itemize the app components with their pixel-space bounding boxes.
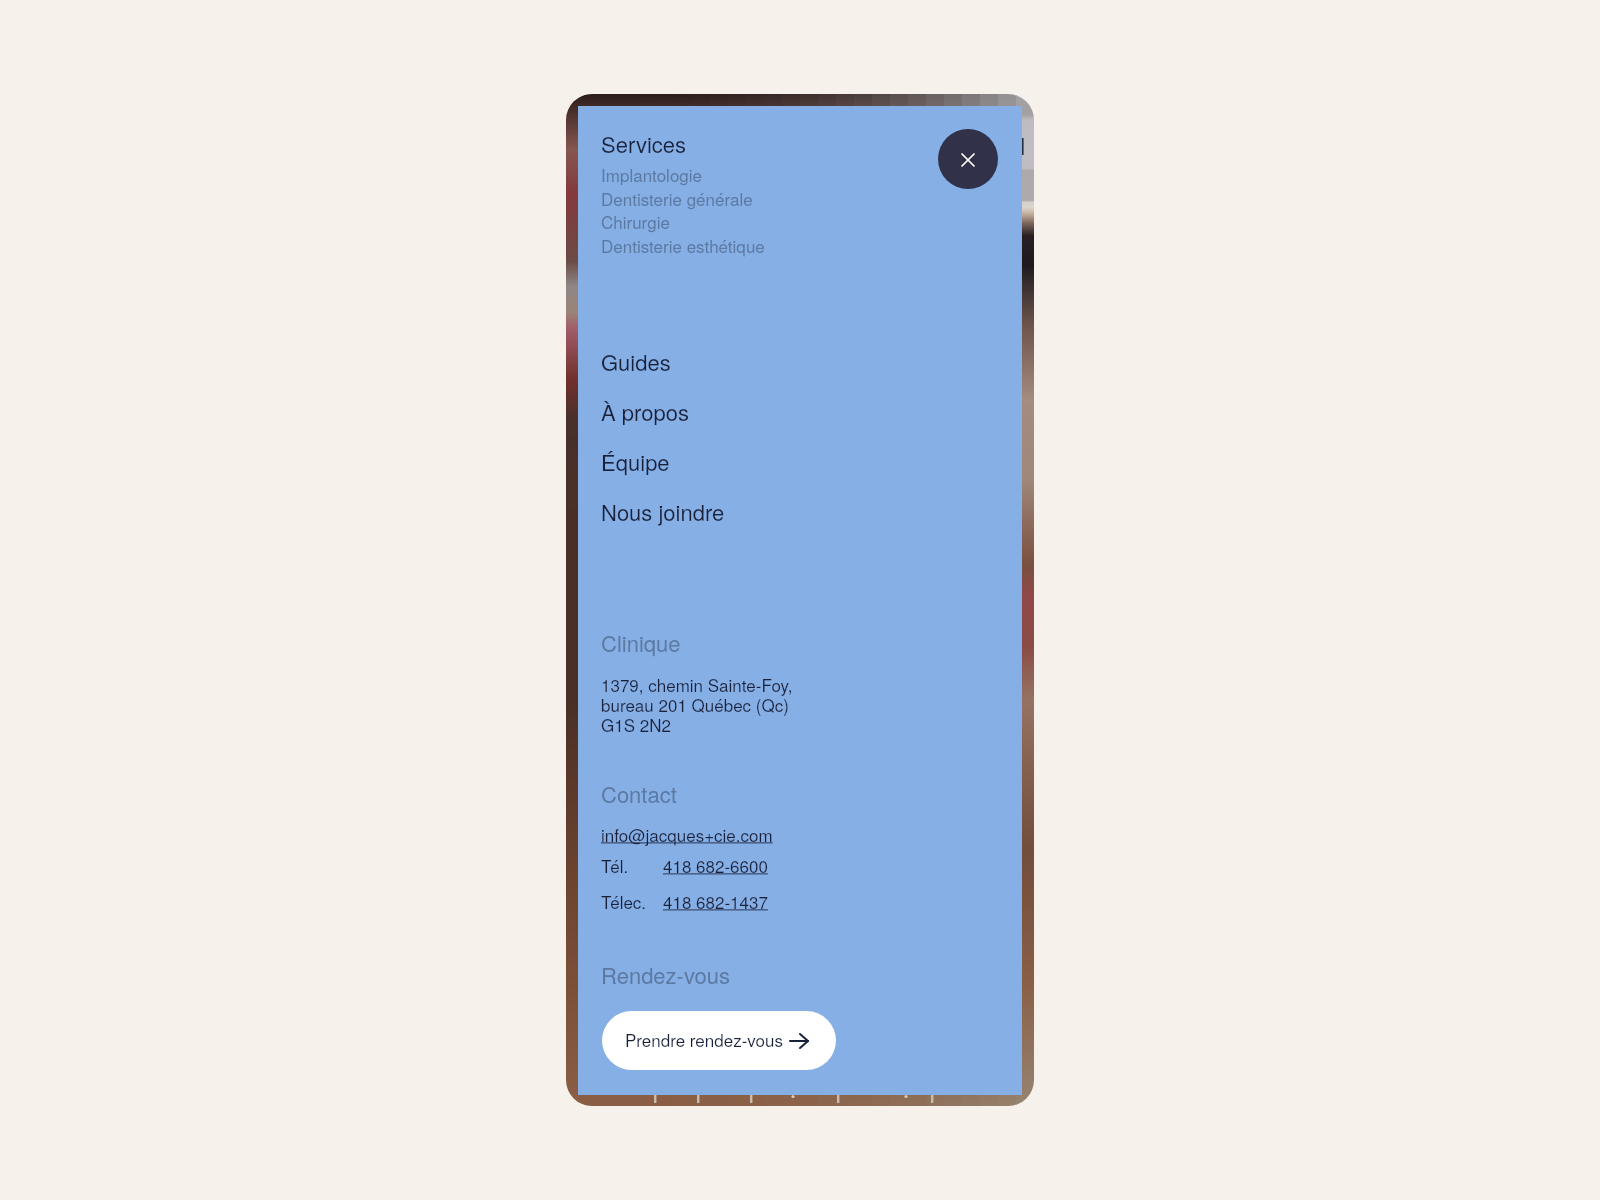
button[interactable]: Équipe <box>595 443 785 481</box>
button[interactable]: info@jacques+cie.com <box>601 822 773 846</box>
button[interactable]: Prendre rendez-vous <box>602 1011 836 1070</box>
button[interactable]: À propos <box>595 393 785 431</box>
staticText: info@jacques+cie.com <box>601 822 773 846</box>
staticText: Dentisterie esthétique <box>601 233 765 257</box>
button[interactable]: Chirurgie <box>595 207 765 231</box>
staticText: 1379, chemin Sainte-Foy, <box>601 672 793 696</box>
button[interactable]: Nous joindre <box>595 493 785 531</box>
button[interactable]: Implantologie <box>595 160 765 184</box>
staticText: Nous joindre <box>601 496 725 528</box>
staticText: Clinique <box>601 627 681 659</box>
staticText: Dentisterie générale <box>601 186 753 210</box>
button[interactable]: Services <box>595 125 785 157</box>
button[interactable]: Dentisterie générale <box>595 184 765 208</box>
staticText: 418 682-1437 <box>663 889 768 913</box>
button[interactable]: Dentisterie esthétique <box>595 231 765 255</box>
staticText: Chirurgie <box>601 209 670 233</box>
staticText: Contact <box>601 778 677 810</box>
staticText: Tél. <box>601 853 629 877</box>
staticText: Implantologie <box>601 162 703 186</box>
staticText: bureau 201 Québec (Qc) <box>601 692 789 716</box>
staticText: Prendre rendez-vous <box>625 1027 783 1051</box>
button[interactable]: 418 682-6600 <box>663 853 768 877</box>
button[interactable]: Guides <box>595 343 785 381</box>
staticText: G1S 2N2 <box>601 712 671 736</box>
staticText: Équipe <box>601 446 670 478</box>
staticText: Services <box>601 128 687 160</box>
staticText: 418 682-6600 <box>663 853 768 877</box>
staticText: Rendez-vous <box>601 959 731 991</box>
staticText: Télec. <box>601 889 647 913</box>
button[interactable]: Close menu <box>938 129 998 189</box>
button[interactable]: 418 682-1437 <box>663 889 768 913</box>
staticText: À propos <box>601 396 689 428</box>
staticText: Guides <box>601 346 671 378</box>
